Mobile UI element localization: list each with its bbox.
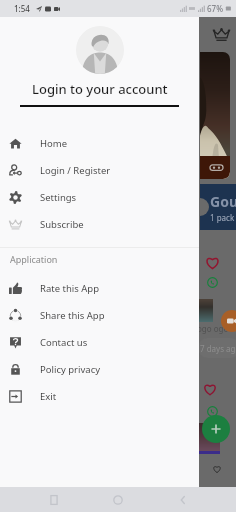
staticText: Settings (40, 191, 77, 204)
button[interactable]: Share this App (0, 302, 199, 329)
other: Glasses (210, 161, 223, 174)
staticText: 1:54 (14, 3, 30, 14)
staticText: Policy privacy (40, 363, 101, 376)
staticText: 67% (207, 3, 223, 14)
button[interactable]: Add (202, 415, 230, 443)
button[interactable]: Contact us (0, 329, 199, 356)
staticText: Login / Register (40, 164, 111, 177)
button[interactable]: Subscribe (213, 26, 230, 43)
staticText: Application (10, 253, 58, 265)
button[interactable]: Subscribe (0, 211, 199, 238)
button[interactable]: Login / Register (0, 157, 199, 184)
staticText: ogo ogo (197, 323, 229, 334)
staticText: 7 days ago (200, 343, 236, 354)
staticText: Share this App (40, 309, 105, 322)
button[interactable]: Back (172, 489, 194, 511)
button[interactable]: Home (0, 130, 199, 157)
button[interactable]: Policy privacy (0, 356, 199, 383)
button[interactable]: Recents (43, 489, 65, 511)
button[interactable]: Exit (0, 383, 199, 410)
staticText: Subscribe (40, 218, 84, 231)
staticText: Exit (40, 390, 57, 403)
button[interactable]: Like (204, 254, 221, 271)
button[interactable]: Settings (0, 184, 199, 211)
button[interactable]: Video call (221, 310, 236, 332)
button[interactable]: Favourite (212, 464, 222, 474)
staticText: Gour (210, 192, 236, 211)
staticText: 1 pack (210, 212, 235, 223)
staticText: Login to your account (32, 80, 168, 98)
button[interactable]: Share on WhatsApp (207, 277, 218, 288)
button[interactable]: Home (107, 489, 129, 511)
staticText: Contact us (40, 336, 88, 349)
staticText: Rate this App (40, 282, 100, 295)
staticText: Home (40, 137, 68, 150)
button[interactable]: Rate this App (0, 275, 199, 302)
